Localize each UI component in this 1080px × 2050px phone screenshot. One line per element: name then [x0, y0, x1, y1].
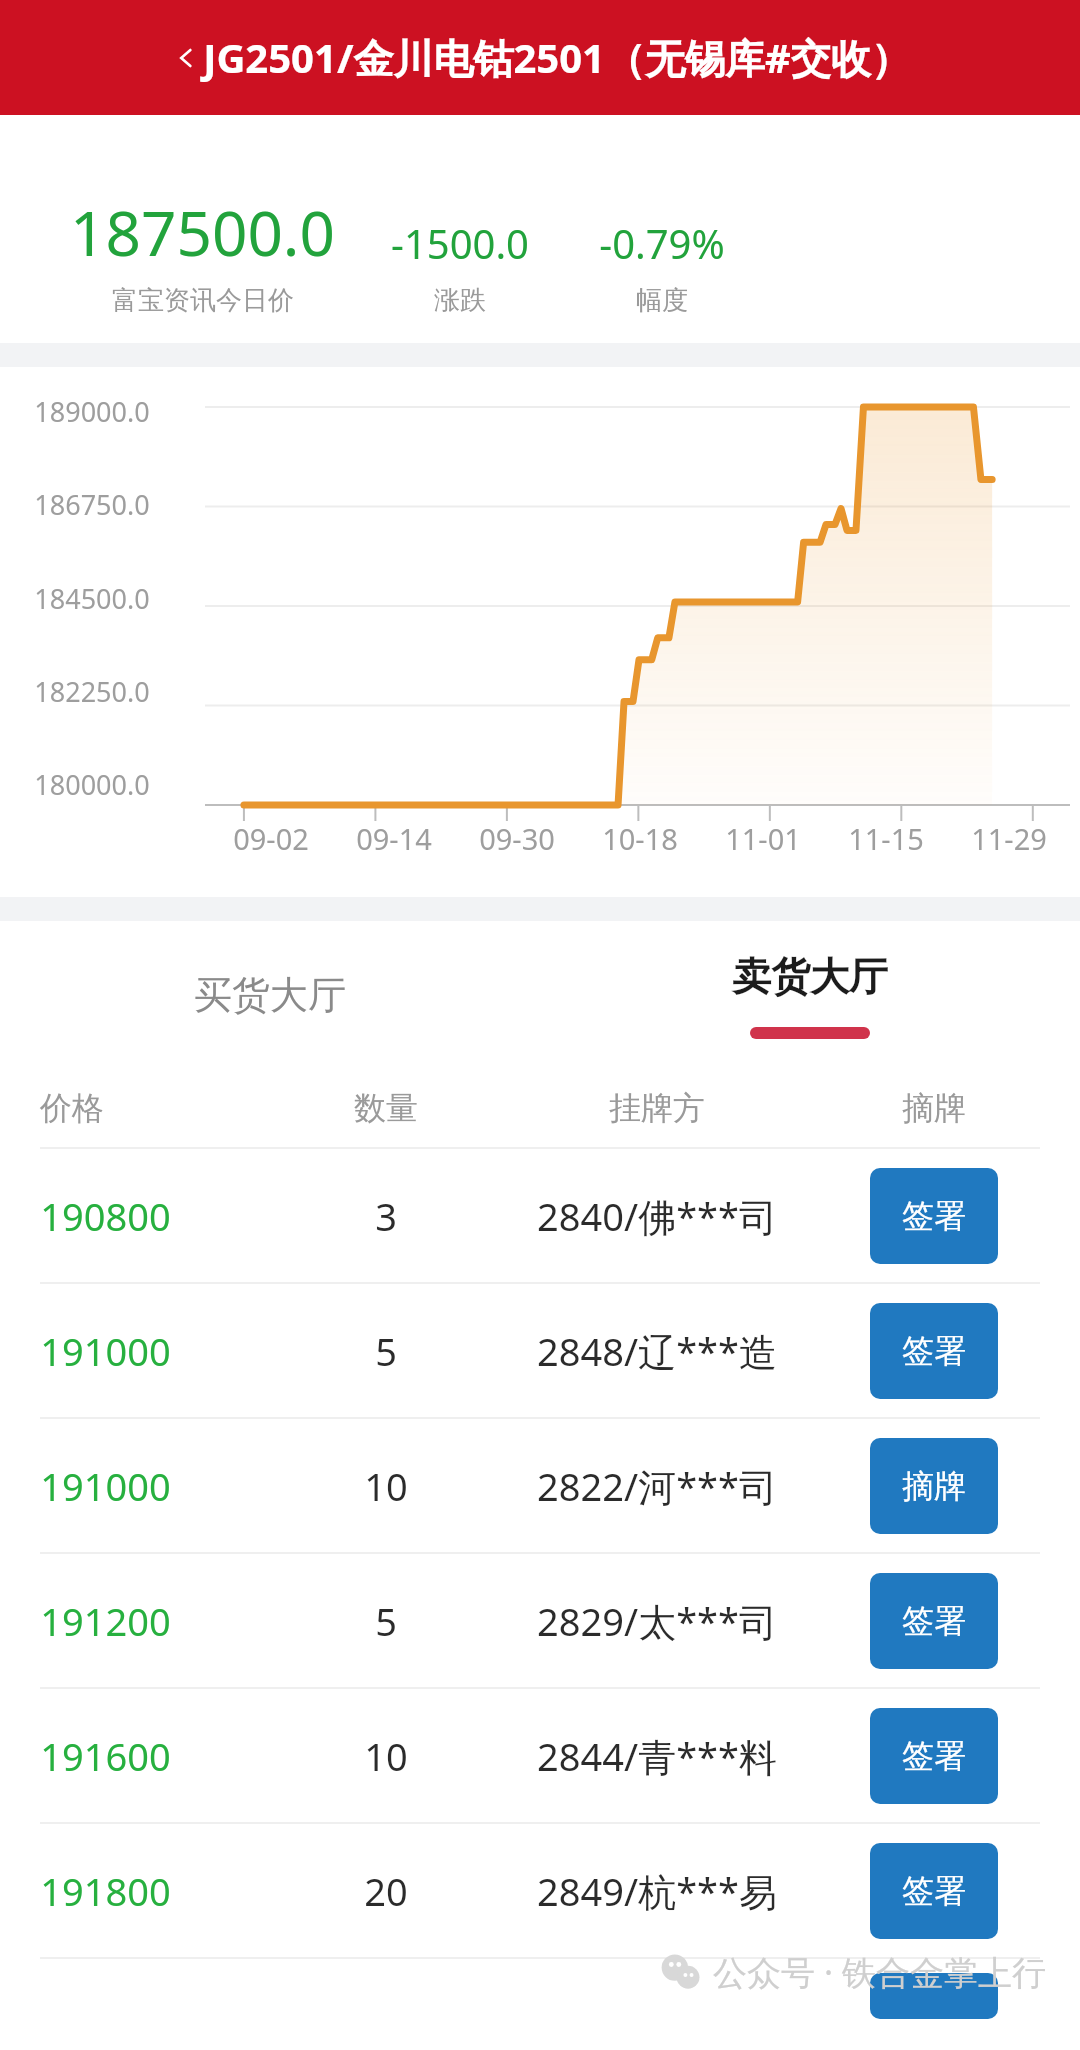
staticText: 09-02	[233, 819, 309, 858]
staticText: 签署	[902, 1871, 966, 1911]
staticText: 挂牌方	[609, 1088, 705, 1128]
button[interactable]: 191800	[0, 1824, 1080, 1957]
button[interactable]: 买货大厅	[0, 921, 540, 1069]
staticText: 20	[364, 1865, 408, 1917]
staticText: 2840/佛***司	[537, 1190, 777, 1242]
staticText: 价格	[40, 1088, 104, 1128]
button[interactable]: 摘牌	[870, 1438, 998, 1534]
staticText: 189000.0	[34, 393, 150, 430]
button[interactable]: 签署	[870, 1168, 998, 1264]
button[interactable]: 190800	[0, 1149, 1080, 1282]
staticText: 数量	[354, 1088, 418, 1128]
button[interactable]: 191200	[0, 1554, 1080, 1687]
button[interactable]: 签署	[870, 1303, 998, 1399]
staticText: -1500.0	[391, 216, 529, 270]
staticText: 签署	[902, 1736, 966, 1776]
staticText: 签署	[902, 1331, 966, 1371]
staticText: 涨跌	[434, 284, 486, 317]
button[interactable]: 签署	[870, 1843, 998, 1939]
staticText: 186750.0	[34, 486, 150, 523]
staticText: 11-29	[971, 819, 1047, 858]
staticText: 摘牌	[902, 1466, 966, 1506]
button[interactable]	[0, 1959, 1080, 2019]
button[interactable]: 卖货大厅	[540, 921, 1080, 1069]
staticText: 卖货大厅	[732, 952, 888, 1001]
staticText: 2829/太***司	[537, 1595, 777, 1647]
staticText: 签署	[902, 1196, 966, 1236]
staticText: 幅度	[636, 284, 688, 317]
staticText: 3	[375, 1190, 397, 1242]
staticText: 191200	[40, 1595, 171, 1647]
button[interactable]: 191000	[0, 1284, 1080, 1417]
staticText: 11-15	[848, 819, 924, 858]
staticText: 5	[375, 1325, 397, 1377]
staticText: 09-30	[479, 819, 555, 858]
staticText: 富宝资讯今日价	[112, 284, 294, 317]
staticText: 11-01	[725, 819, 801, 858]
staticText: 2822/河***司	[537, 1460, 777, 1512]
staticText: 184500.0	[34, 580, 150, 617]
staticText: 10-18	[602, 819, 678, 858]
button[interactable]: 191000	[0, 1419, 1080, 1552]
staticText: 10	[364, 1460, 408, 1512]
staticText: 签署	[902, 1601, 966, 1641]
staticText: 2849/杭***易	[537, 1865, 777, 1917]
staticText: 180000.0	[34, 766, 150, 803]
button[interactable]: 191600	[0, 1689, 1080, 1822]
button[interactable]: 签署	[870, 1573, 998, 1669]
staticText: 187500.0	[70, 190, 335, 274]
staticText: 5	[375, 1595, 397, 1647]
staticText: 买货大厅	[194, 971, 346, 1019]
staticText: -0.79%	[599, 216, 725, 270]
button[interactable]: 签署	[870, 1708, 998, 1804]
staticText: 191600	[40, 1730, 171, 1782]
staticText: 182250.0	[34, 673, 150, 710]
staticText: 190800	[40, 1190, 171, 1242]
staticText: 09-14	[356, 819, 432, 858]
staticText: 191000	[40, 1325, 171, 1377]
staticText: 191800	[40, 1865, 171, 1917]
button[interactable]: Back	[169, 41, 203, 75]
staticText: 191000	[40, 1460, 171, 1512]
staticText: JG2501/金川电钴2501（无锡库#交收）	[203, 30, 911, 85]
staticText: 10	[364, 1730, 408, 1782]
staticText: 2848/辽***造	[537, 1325, 777, 1377]
staticText: 摘牌	[902, 1088, 966, 1128]
staticText: 2844/青***料	[537, 1730, 777, 1782]
staticText: 公众号 · 铁合金掌上行	[713, 1949, 1046, 1995]
